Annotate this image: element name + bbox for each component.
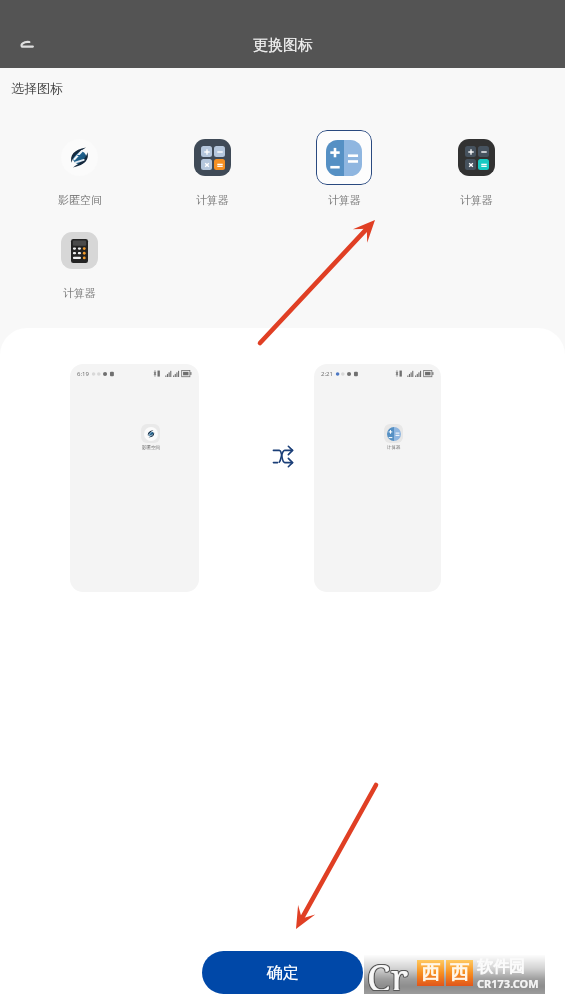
staticText: CR173.COM	[477, 976, 539, 991]
button[interactable]: 计算器	[146, 139, 278, 207]
staticText: 计算器	[328, 193, 361, 207]
staticText: 计算器	[460, 193, 493, 207]
button[interactable]: 影匿空间	[13, 139, 146, 207]
button[interactable]: 确定	[202, 951, 363, 994]
staticText: 计算器	[196, 193, 229, 207]
staticText: 选择图标	[11, 80, 63, 96]
staticText: 计算器	[387, 445, 401, 451]
button[interactable]: 计算器	[13, 232, 146, 300]
button[interactable]: 计算器	[278, 139, 410, 207]
staticText: Cr	[366, 950, 408, 989]
staticText: 确定	[267, 963, 299, 983]
button[interactable]: Shuffle	[268, 441, 298, 471]
staticText: 更换图标	[253, 36, 313, 55]
staticText: Cr	[367, 951, 409, 990]
staticText: Cr	[367, 952, 409, 991]
staticText: Cr	[368, 950, 410, 989]
staticText: Cr	[368, 951, 410, 990]
staticText: 西	[421, 961, 440, 985]
staticText: 软件园	[477, 957, 525, 977]
staticText: Cr	[368, 952, 410, 991]
staticText: Cr	[366, 951, 408, 990]
staticText: 计算器	[63, 286, 96, 300]
staticText: 2:21	[321, 370, 333, 378]
button[interactable]: Back	[5, 22, 47, 64]
staticText: Cr	[367, 950, 409, 989]
button[interactable]: 计算器	[410, 139, 542, 207]
staticText: 影匿空间	[58, 193, 102, 207]
staticText: 6:19	[77, 370, 89, 378]
staticText: 西	[450, 961, 469, 985]
staticText: Cr	[366, 952, 408, 991]
staticText: 影匿空间	[142, 445, 160, 451]
